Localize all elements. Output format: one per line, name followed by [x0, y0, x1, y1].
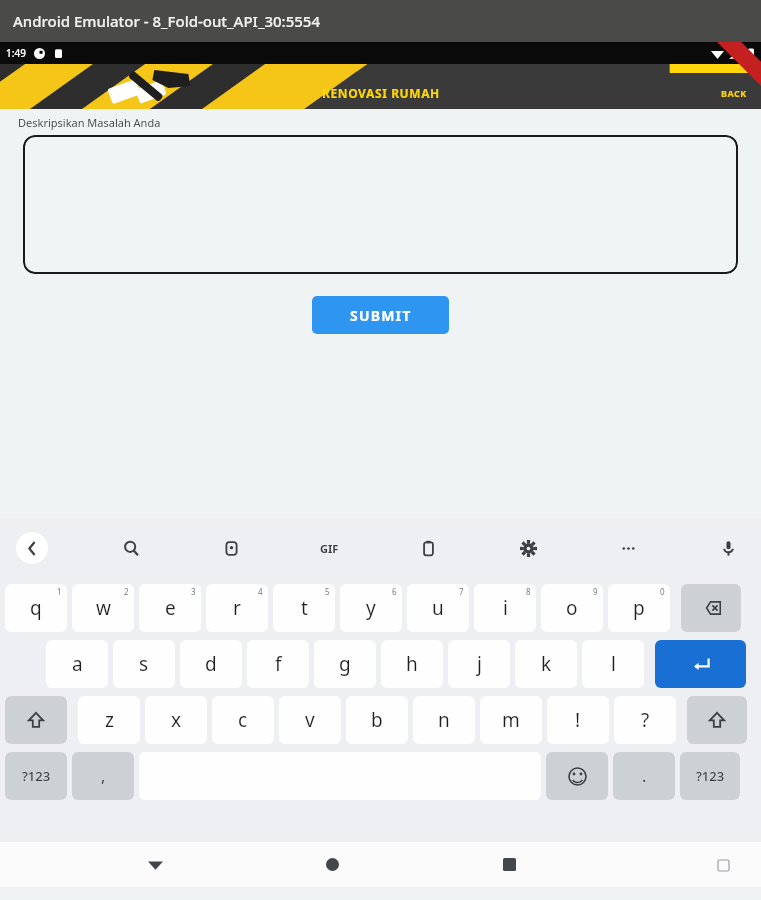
staticText: s: [139, 651, 149, 677]
button[interactable]: Stickers: [214, 531, 248, 565]
button[interactable]: d: [180, 640, 242, 688]
staticText: i: [503, 595, 508, 621]
button[interactable]: Enter: [655, 640, 746, 688]
staticText: q: [30, 595, 42, 621]
staticText: t: [301, 595, 308, 621]
button[interactable]: m: [480, 696, 542, 744]
button[interactable]: r: [206, 584, 268, 632]
button[interactable]: Clipboard: [411, 531, 445, 565]
button[interactable]: w: [72, 584, 134, 632]
button[interactable]: x: [145, 696, 207, 744]
button[interactable]: Voice input: [711, 531, 745, 565]
staticText: y: [366, 595, 376, 621]
button[interactable]: GIF: [314, 535, 345, 562]
staticText: j: [477, 651, 482, 677]
staticText: h: [406, 651, 418, 677]
button[interactable]: p: [608, 584, 670, 632]
button[interactable]: Home: [309, 842, 355, 887]
staticText: r: [233, 595, 241, 621]
button[interactable]: Back: [16, 532, 48, 564]
staticText: z: [105, 707, 114, 733]
button[interactable]: h: [381, 640, 443, 688]
staticText: k: [541, 651, 552, 677]
button[interactable]: Shift: [687, 696, 747, 744]
staticText: ?123: [22, 767, 51, 785]
staticText: m: [502, 707, 520, 733]
staticText: 2: [124, 586, 129, 597]
staticText: l: [611, 651, 616, 677]
button[interactable]: j: [448, 640, 510, 688]
staticText: ?: [641, 707, 650, 733]
staticText: ?123: [696, 767, 725, 785]
button[interactable]: [23, 135, 738, 274]
button[interactable]: Recents: [486, 842, 532, 887]
button[interactable]: !: [547, 696, 609, 744]
button[interactable]: Back: [132, 842, 178, 887]
button[interactable]: Search: [114, 531, 148, 565]
staticText: d: [205, 651, 217, 677]
staticText: e: [165, 595, 176, 621]
button[interactable]: a: [46, 640, 108, 688]
button[interactable]: ?: [614, 696, 676, 744]
button[interactable]: l: [582, 640, 644, 688]
staticText: 1: [57, 586, 62, 597]
staticText: GIF: [320, 541, 339, 556]
staticText: a: [72, 651, 83, 677]
staticText: f: [275, 651, 282, 677]
button[interactable]: c: [212, 696, 274, 744]
staticText: c: [238, 707, 248, 733]
staticText: !: [575, 707, 581, 733]
button[interactable]: q: [5, 584, 67, 632]
button[interactable]: Backspace: [681, 584, 741, 632]
button[interactable]: y: [340, 584, 402, 632]
staticText: b: [371, 707, 383, 733]
button[interactable]: u: [407, 584, 469, 632]
staticText: o: [566, 595, 578, 621]
staticText: .: [642, 765, 647, 787]
button[interactable]: e: [139, 584, 201, 632]
button[interactable]: ?123: [680, 752, 740, 800]
button[interactable]: o: [541, 584, 603, 632]
staticText: 8: [526, 586, 531, 597]
button[interactable]: s: [113, 640, 175, 688]
button[interactable]: Period: [613, 752, 675, 800]
button[interactable]: Settings: [511, 531, 545, 565]
staticText: ,: [101, 765, 106, 787]
button[interactable]: b: [346, 696, 408, 744]
staticText: g: [339, 651, 351, 677]
button[interactable]: f: [247, 640, 309, 688]
staticText: Android Emulator - 8_Fold-out_API_30:555…: [13, 11, 320, 31]
staticText: Deskripsikan Masalah Anda: [18, 115, 161, 130]
staticText: p: [633, 595, 645, 621]
button[interactable]: BACK: [707, 83, 761, 103]
staticText: u: [432, 595, 444, 621]
button[interactable]: n: [413, 696, 475, 744]
button[interactable]: v: [279, 696, 341, 744]
staticText: v: [305, 707, 315, 733]
staticText: 3: [191, 586, 196, 597]
button[interactable]: More options: [611, 531, 645, 565]
staticText: RENOVASI RUMAH: [322, 85, 440, 101]
staticText: 5: [325, 586, 330, 597]
staticText: 0: [660, 586, 665, 597]
button[interactable]: SUBMIT: [312, 296, 449, 334]
button[interactable]: ?123: [5, 752, 67, 800]
staticText: 4: [258, 586, 263, 597]
staticText: BACK: [721, 87, 747, 99]
staticText: 6: [392, 586, 397, 597]
staticText: 7: [459, 586, 464, 597]
staticText: 9: [593, 586, 598, 597]
button[interactable]: Shift: [5, 696, 67, 744]
button[interactable]: Comma: [72, 752, 134, 800]
button[interactable]: g: [314, 640, 376, 688]
button[interactable]: t: [273, 584, 335, 632]
staticText: 1:49: [6, 46, 26, 60]
button[interactable]: z: [78, 696, 140, 744]
staticText: n: [438, 707, 450, 733]
staticText: SUBMIT: [350, 306, 412, 325]
button[interactable]: Keyboard indicator: [703, 845, 743, 885]
button[interactable]: Emoji: [546, 752, 608, 800]
button[interactable]: i: [474, 584, 536, 632]
button[interactable]: k: [515, 640, 577, 688]
